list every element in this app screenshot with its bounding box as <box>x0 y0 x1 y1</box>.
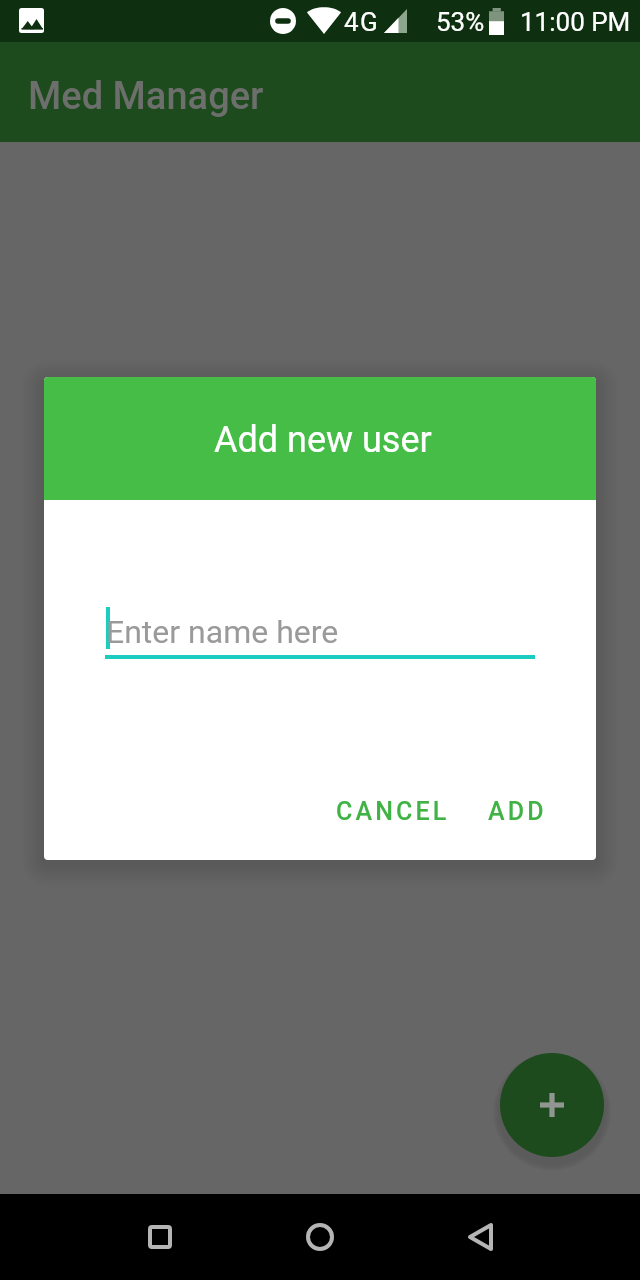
staticText: 53% <box>436 7 485 37</box>
staticText: 11:00 PM <box>520 7 631 37</box>
button[interactable]: Back <box>436 1194 524 1280</box>
staticText: Add new user <box>214 419 432 461</box>
staticText: Med Manager <box>28 74 264 119</box>
staticText: ADD <box>488 797 547 826</box>
button[interactable]: Recent apps <box>116 1194 204 1280</box>
button[interactable]: ADD <box>464 779 571 843</box>
button[interactable]: Home <box>276 1194 364 1280</box>
staticText: 4G <box>344 7 380 37</box>
button[interactable]: Add <box>500 1053 604 1157</box>
staticText: Enter name here <box>106 613 339 651</box>
staticText: CANCEL <box>336 797 450 826</box>
button[interactable]: CANCEL <box>312 779 474 843</box>
button[interactable]: Enter name here <box>105 605 535 659</box>
